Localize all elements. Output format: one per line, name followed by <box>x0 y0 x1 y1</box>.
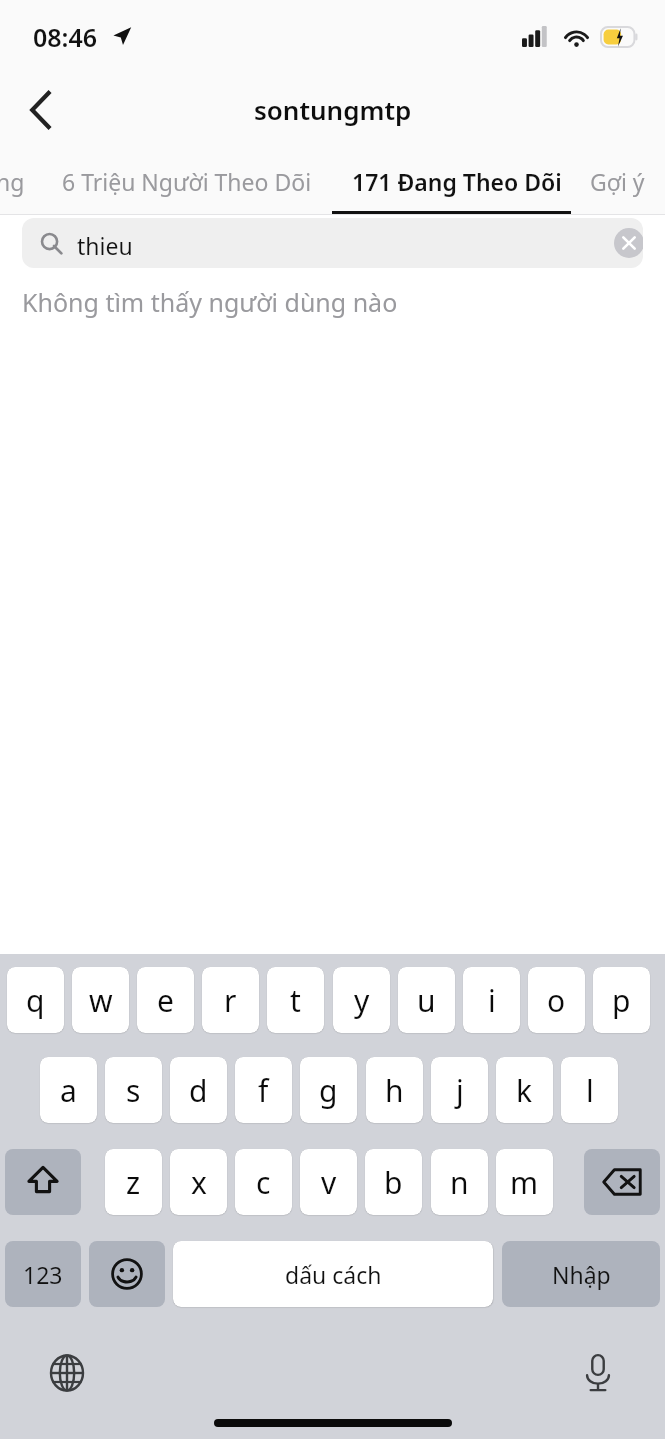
staticText: 08:46 <box>33 20 98 54</box>
staticText: h <box>385 1070 404 1111</box>
staticText: l <box>586 1070 594 1111</box>
button[interactable]: d <box>170 1057 227 1123</box>
button[interactable]: h <box>366 1057 423 1123</box>
button[interactable]: Nhập <box>502 1241 660 1307</box>
staticText: r <box>224 980 237 1021</box>
button[interactable]: Voice input <box>573 1348 623 1398</box>
button[interactable]: p <box>593 967 650 1033</box>
button[interactable]: x <box>170 1149 227 1215</box>
staticText: w <box>89 980 113 1021</box>
staticText: s <box>126 1070 141 1111</box>
button[interactable]: Numbers <box>5 1241 81 1307</box>
staticText: u <box>417 980 436 1021</box>
staticText: n <box>450 1162 469 1203</box>
staticText: x <box>191 1162 207 1203</box>
staticText: v <box>321 1162 337 1203</box>
staticText: e <box>157 980 174 1021</box>
staticText: sontungmtp <box>254 92 412 127</box>
staticText: thieu <box>77 230 133 261</box>
button[interactable]: thieu <box>22 218 643 268</box>
button[interactable]: Back <box>8 72 74 147</box>
button[interactable]: m <box>496 1149 553 1215</box>
staticText: 123 <box>23 1259 63 1290</box>
button[interactable]: y <box>333 967 390 1033</box>
button[interactable]: a <box>40 1057 97 1123</box>
button[interactable]: r <box>202 967 259 1033</box>
button[interactable]: f <box>235 1057 292 1123</box>
button[interactable]: Clear text <box>604 218 643 268</box>
button[interactable]: b <box>365 1149 422 1215</box>
button[interactable]: c <box>235 1149 292 1215</box>
staticText: d <box>189 1070 208 1111</box>
button[interactable]: Gợi ý <box>590 166 645 197</box>
staticText: j <box>456 1070 464 1111</box>
button[interactable]: Change keyboard <box>42 1348 92 1398</box>
staticText: t <box>290 980 301 1021</box>
staticText: y <box>354 980 370 1021</box>
staticText: m <box>510 1162 539 1203</box>
button[interactable]: 171 Đang Theo Dõi <box>352 166 562 197</box>
staticText: o <box>547 980 566 1021</box>
staticText: f <box>258 1070 269 1111</box>
button[interactable]: q <box>7 967 64 1033</box>
staticText: c <box>256 1162 271 1203</box>
staticText: Nhập <box>552 1259 611 1290</box>
button[interactable]: ng <box>0 166 25 197</box>
staticText: Không tìm thấy người dùng nào <box>22 285 398 319</box>
button[interactable]: u <box>398 967 455 1033</box>
staticText: z <box>126 1162 141 1203</box>
staticText: b <box>384 1162 403 1203</box>
staticText: dấu cách <box>285 1259 382 1290</box>
button[interactable]: o <box>528 967 585 1033</box>
button[interactable]: l <box>561 1057 618 1123</box>
button[interactable]: 6 Triệu Người Theo Dõi <box>62 166 312 197</box>
button[interactable]: v <box>300 1149 357 1215</box>
button[interactable]: Backspace <box>584 1149 660 1215</box>
button[interactable]: i <box>463 967 520 1033</box>
button[interactable]: z <box>105 1149 162 1215</box>
button[interactable]: dấu cách <box>173 1241 493 1307</box>
button[interactable]: g <box>300 1057 357 1123</box>
button[interactable]: e <box>137 967 194 1033</box>
button[interactable]: Shift <box>5 1149 81 1215</box>
staticText: a <box>60 1070 77 1111</box>
staticText: i <box>488 980 496 1021</box>
button[interactable]: j <box>431 1057 488 1123</box>
button[interactable]: s <box>105 1057 162 1123</box>
button[interactable]: Emoji <box>89 1241 165 1307</box>
staticText: k <box>516 1070 533 1111</box>
button[interactable]: t <box>267 967 324 1033</box>
staticText: q <box>26 980 45 1021</box>
button[interactable]: n <box>431 1149 488 1215</box>
button[interactable]: k <box>496 1057 553 1123</box>
button[interactable]: w <box>72 967 129 1033</box>
staticText: g <box>319 1070 338 1111</box>
staticText: p <box>612 980 631 1021</box>
